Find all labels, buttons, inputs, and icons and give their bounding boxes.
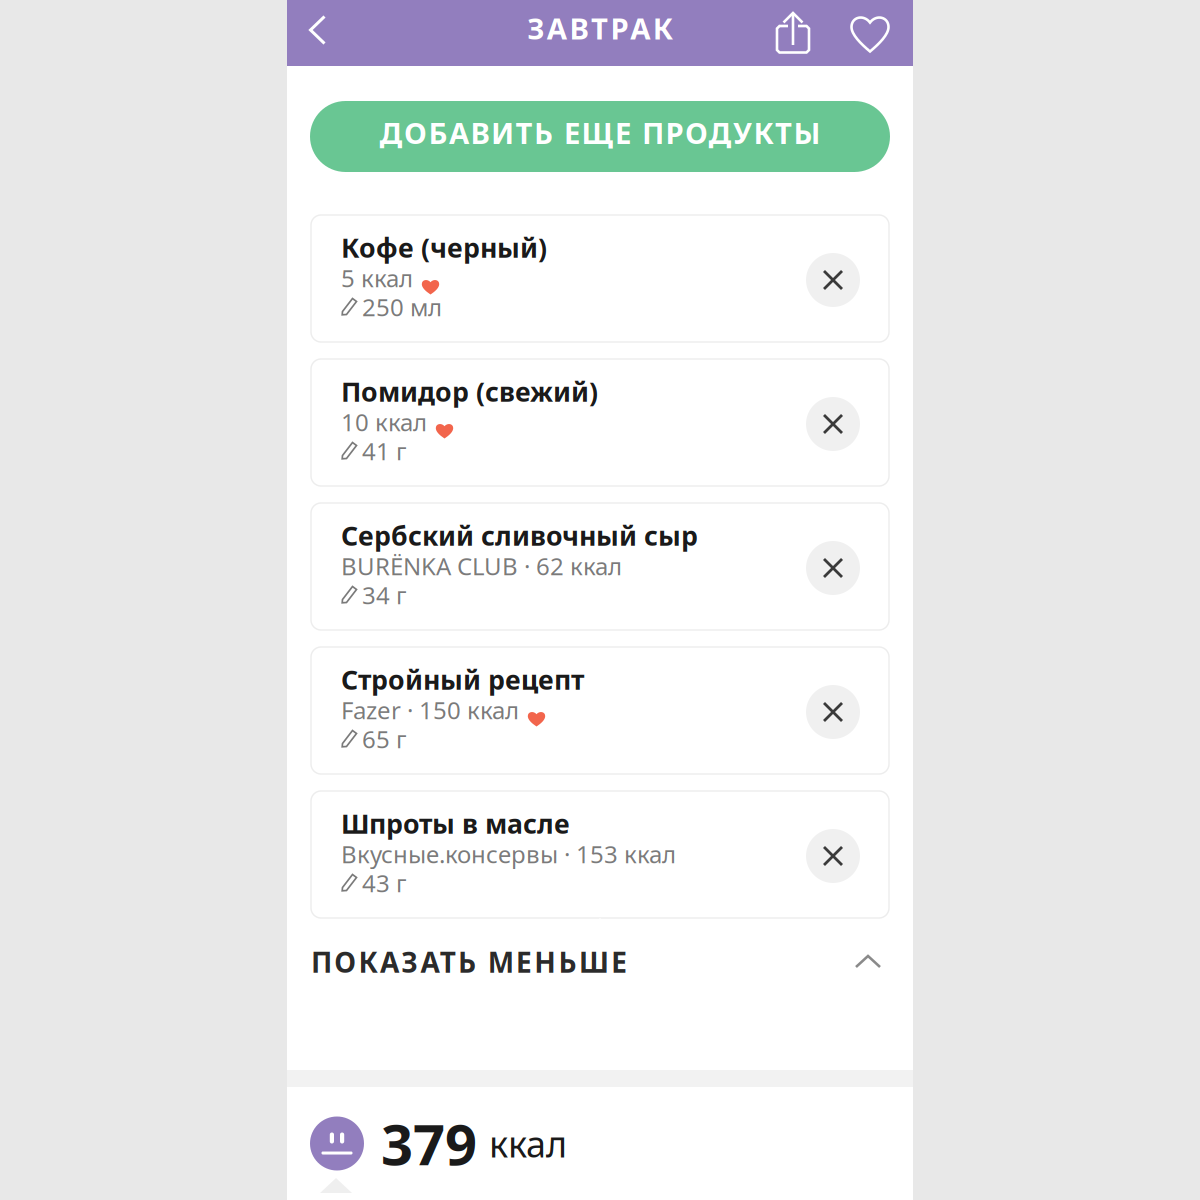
staticText: 65 г	[362, 723, 407, 755]
button[interactable]: Стройный рецепт	[311, 647, 889, 774]
button[interactable]: Кофе (черный)	[311, 215, 889, 342]
staticText: 379	[381, 1106, 477, 1181]
staticText: Fazer · 150 ккал	[341, 694, 519, 726]
staticText: ккал	[489, 1120, 567, 1167]
staticText: 250 мл	[362, 291, 442, 323]
staticText: ДОБАВИТЬ ЕЩЕ ПРОДУКТЫ	[379, 113, 820, 152]
button[interactable]: Share	[746, 2, 840, 64]
staticText: ЗАВТРАК	[527, 8, 673, 47]
staticText: Кофе (черный)	[341, 230, 547, 265]
button[interactable]: Favorite	[840, 2, 900, 64]
staticText: BURËNKA CLUB · 62 ккал	[341, 550, 622, 582]
staticText: Сербский сливочный сыр	[341, 518, 698, 553]
button[interactable]: ПОКАЗАТЬ МЕНЬШЕ	[311, 930, 889, 994]
button[interactable]: Помидор (свежий)	[311, 359, 889, 486]
button[interactable]: Шпроты в масле	[311, 791, 889, 918]
staticText: 34 г	[362, 579, 407, 611]
staticText: 10 ккал	[341, 406, 427, 438]
staticText: Вкусные.консервы · 153 ккал	[341, 838, 676, 870]
staticText: Помидор (свежий)	[341, 374, 598, 409]
button[interactable]: Back	[287, 0, 348, 66]
staticText: 43 г	[362, 867, 407, 899]
staticText: 5 ккал	[341, 262, 413, 294]
button[interactable]: Сербский сливочный сыр	[311, 503, 889, 630]
staticText: ПОКАЗАТЬ МЕНЬШЕ	[311, 943, 627, 981]
staticText: Шпроты в масле	[341, 806, 570, 841]
staticText: 41 г	[362, 435, 407, 467]
button[interactable]: ДОБАВИТЬ ЕЩЕ ПРОДУКТЫ	[310, 101, 890, 172]
staticText: Стройный рецепт	[341, 662, 584, 697]
